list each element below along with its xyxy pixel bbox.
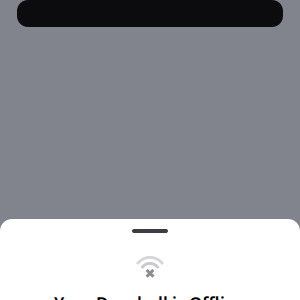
staticText: Your Doorbell is Offline <box>54 292 246 300</box>
